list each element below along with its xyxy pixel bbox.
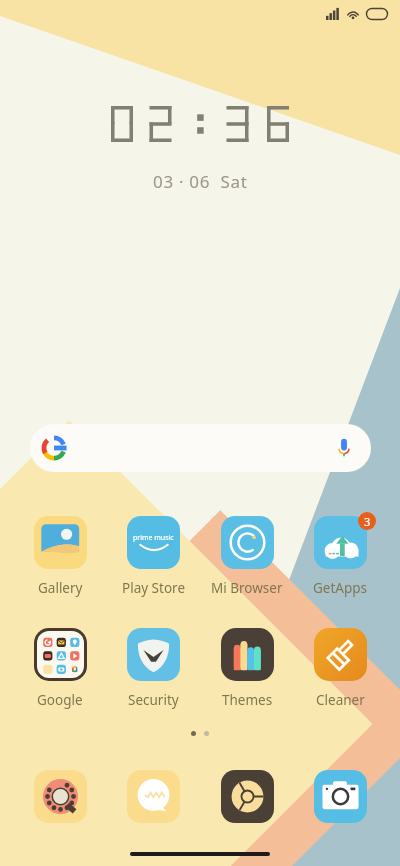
button[interactable]: Chrome [207,770,287,823]
button[interactable] [30,424,371,472]
button[interactable]: Themes [207,628,287,709]
staticText: Cleaner [316,691,365,709]
button[interactable]: Mi Browser [207,516,287,597]
staticText: 3 [364,514,371,529]
staticText: Mi Browser [211,579,283,597]
staticText: 03 · 06 Sat [153,170,248,193]
button[interactable]: Gallery [20,516,100,597]
button[interactable]: Google [20,628,100,709]
staticText: prime music [133,533,174,543]
staticText: Gallery [38,579,83,597]
button[interactable]: GetApps [300,516,380,597]
button[interactable]: Cleaner [300,628,380,709]
button[interactable]: Camera [300,770,380,823]
button[interactable]: Play Store [113,516,193,597]
button[interactable]: Phone [20,770,100,823]
staticText: GetApps [313,579,368,597]
staticText: Play Store [122,579,185,597]
button[interactable]: Security [113,628,193,709]
staticText: Google [37,691,83,709]
button[interactable]: Messages [113,770,193,823]
staticText: Security [128,691,179,709]
staticText: Themes [222,691,273,709]
